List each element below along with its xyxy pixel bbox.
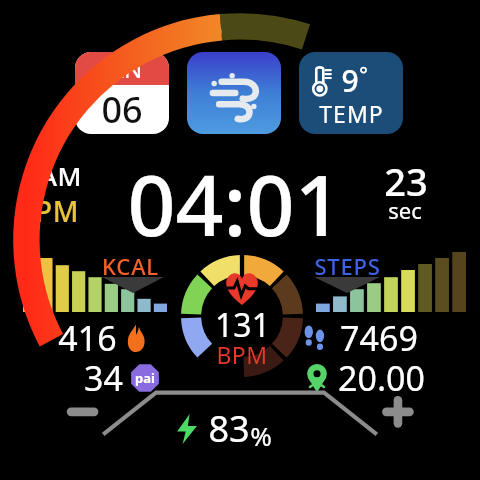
staticText: STEPS — [314, 251, 381, 281]
button[interactable]: Temperature 9 degrees — [299, 52, 403, 134]
button[interactable]: Steps 7469, distance 20.00 — [300, 252, 476, 392]
button[interactable]: Calories 416, PAI 34 — [14, 252, 184, 392]
button[interactable]: Time 04:01 — [104, 146, 366, 242]
button[interactable]: Calendar January 6 — [75, 52, 169, 134]
button[interactable]: Day selector Monday — [180, 8, 300, 42]
staticText: AM — [40, 158, 82, 193]
staticText: TEMP — [319, 98, 384, 129]
staticText: BPM — [216, 339, 268, 367]
staticText: sec — [388, 195, 422, 225]
staticText: 34 — [84, 355, 123, 401]
staticText: pai — [135, 369, 155, 387]
staticText: ° — [359, 60, 368, 87]
staticText: 7469 — [340, 315, 418, 361]
button[interactable]: Battery 83 percent — [0, 0, 480, 480]
staticText: 04:01 — [127, 146, 343, 242]
staticText: 9 — [341, 60, 359, 101]
staticText: 83 — [208, 404, 250, 453]
button[interactable]: 23 seconds — [378, 155, 464, 233]
staticText: 416 — [58, 315, 117, 361]
button[interactable]: Heart rate 131 BPM — [181, 255, 303, 377]
staticText: JAN — [101, 52, 143, 85]
button[interactable]: Wind — [187, 52, 281, 134]
staticText: 06 — [101, 85, 143, 134]
staticText: PM — [35, 192, 79, 230]
staticText: 23 — [384, 155, 428, 207]
staticText: 20.00 — [338, 355, 425, 401]
staticText: 131 — [215, 303, 270, 339]
staticText: KCAL — [102, 251, 159, 281]
staticText: MON — [209, 10, 271, 41]
button[interactable]: AM PM indicator — [14, 158, 110, 232]
staticText: % — [250, 418, 272, 453]
